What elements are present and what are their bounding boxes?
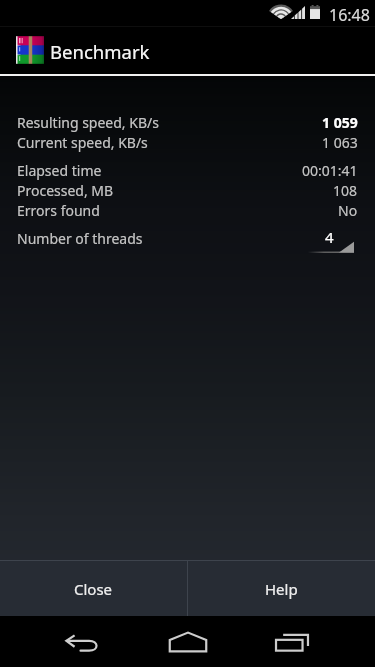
staticText: Errors found — [17, 201, 100, 220]
button[interactable]: Help — [188, 561, 375, 616]
staticText: 108 — [333, 181, 358, 200]
staticText: Benchmark — [50, 39, 150, 64]
staticText: Close — [74, 579, 113, 599]
button[interactable]: Recent apps — [257, 616, 327, 667]
staticText: Processed, MB — [17, 181, 114, 200]
staticText: 16:48 — [329, 4, 370, 26]
staticText: No — [338, 201, 358, 220]
staticText: Resulting speed, KB/s — [17, 113, 159, 132]
button[interactable]: Home — [153, 616, 223, 667]
staticText: 1 063 — [322, 133, 358, 152]
staticText: Current speed, KB/s — [17, 133, 148, 152]
staticText: Help — [265, 579, 298, 599]
button[interactable]: Back — [47, 618, 117, 667]
button[interactable]: 4 — [308, 222, 354, 254]
staticText: 1 059 — [322, 113, 358, 132]
staticText: Number of threads — [17, 229, 143, 248]
staticText: 00:01:41 — [302, 161, 358, 180]
button[interactable]: Close — [0, 561, 187, 616]
staticText: Elapsed time — [17, 161, 102, 180]
staticText: 4 — [325, 227, 334, 247]
